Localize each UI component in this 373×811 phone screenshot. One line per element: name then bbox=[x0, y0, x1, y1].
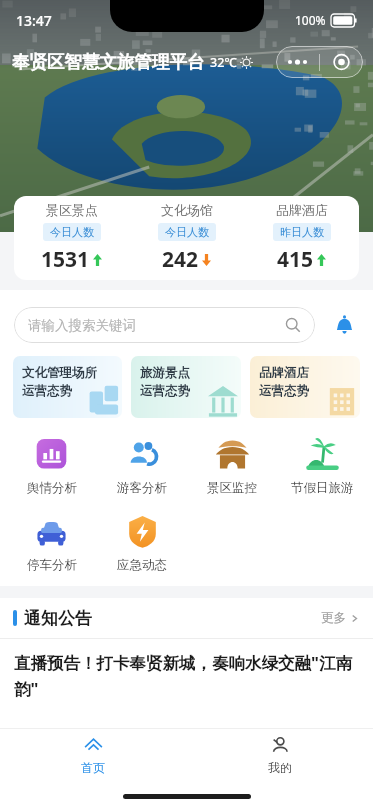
staticText: 景区监控 bbox=[207, 480, 257, 496]
staticText: 我的 bbox=[268, 760, 292, 775]
staticText: 32℃ bbox=[210, 54, 237, 71]
button[interactable]: Notifications bbox=[329, 310, 359, 340]
staticText: 昨日人数 bbox=[280, 225, 324, 239]
staticText: 通知公告 bbox=[24, 608, 92, 629]
staticText: 节假日旅游 bbox=[291, 480, 354, 496]
staticText: 首页 bbox=[81, 760, 105, 775]
button[interactable]: 文化场馆 bbox=[129, 202, 244, 274]
staticText: 文化管理场所 bbox=[22, 365, 97, 381]
staticText: 请输入搜索关键词 bbox=[28, 317, 136, 334]
staticText: 应急动态 bbox=[117, 557, 167, 573]
staticText: 13:47 bbox=[16, 11, 52, 30]
button[interactable]: More options bbox=[276, 46, 363, 78]
staticText: 更多 bbox=[321, 610, 346, 626]
staticText: 242 bbox=[162, 245, 199, 274]
button[interactable]: 应急动态 bbox=[97, 511, 187, 575]
button[interactable]: 我的 bbox=[186, 729, 373, 781]
button[interactable]: 请输入搜索关键词 bbox=[14, 307, 315, 343]
staticText: 运营态势 bbox=[259, 383, 309, 399]
button[interactable]: 品牌酒店 bbox=[244, 202, 359, 274]
button[interactable]: 品牌酒店 bbox=[250, 356, 360, 418]
staticText: 直播预告！打卡奉贤新城，奏响水绿交融"江南韵" bbox=[14, 651, 359, 700]
button[interactable]: 首页 bbox=[0, 729, 186, 781]
staticText: 舆情分析 bbox=[27, 480, 77, 496]
button[interactable]: 通知公告 bbox=[0, 598, 373, 638]
staticText: 旅游景点 bbox=[140, 365, 190, 381]
staticText: 游客分析 bbox=[117, 480, 167, 496]
button[interactable]: 舆情分析 bbox=[6, 434, 97, 498]
staticText: 运营态势 bbox=[140, 383, 190, 399]
button[interactable]: 直播预告！打卡奉贤新城，奏响水绿交融"江南韵" bbox=[0, 639, 373, 700]
button[interactable]: 文化管理场所 bbox=[13, 356, 122, 418]
button[interactable]: 景区监控 bbox=[187, 434, 277, 498]
staticText: 品牌酒店 bbox=[276, 202, 328, 218]
staticText: 415 bbox=[277, 245, 314, 274]
staticText: 景区景点 bbox=[46, 202, 98, 218]
button[interactable]: 节假日旅游 bbox=[277, 434, 367, 498]
staticText: 品牌酒店 bbox=[259, 365, 309, 381]
button[interactable]: 景区景点 bbox=[14, 202, 129, 274]
staticText: 奉贤区智慧文旅管理平台 bbox=[12, 51, 205, 73]
staticText: 1531 bbox=[41, 245, 90, 274]
staticText: 今日人数 bbox=[165, 225, 209, 239]
staticText: 停车分析 bbox=[27, 557, 77, 573]
button[interactable]: 旅游景点 bbox=[131, 356, 241, 418]
staticText: 运营态势 bbox=[22, 383, 72, 399]
staticText: 100% bbox=[295, 12, 326, 28]
button[interactable]: 游客分析 bbox=[97, 434, 187, 498]
staticText: 文化场馆 bbox=[161, 202, 213, 218]
staticText: 今日人数 bbox=[50, 225, 94, 239]
button[interactable]: 停车分析 bbox=[6, 511, 97, 575]
